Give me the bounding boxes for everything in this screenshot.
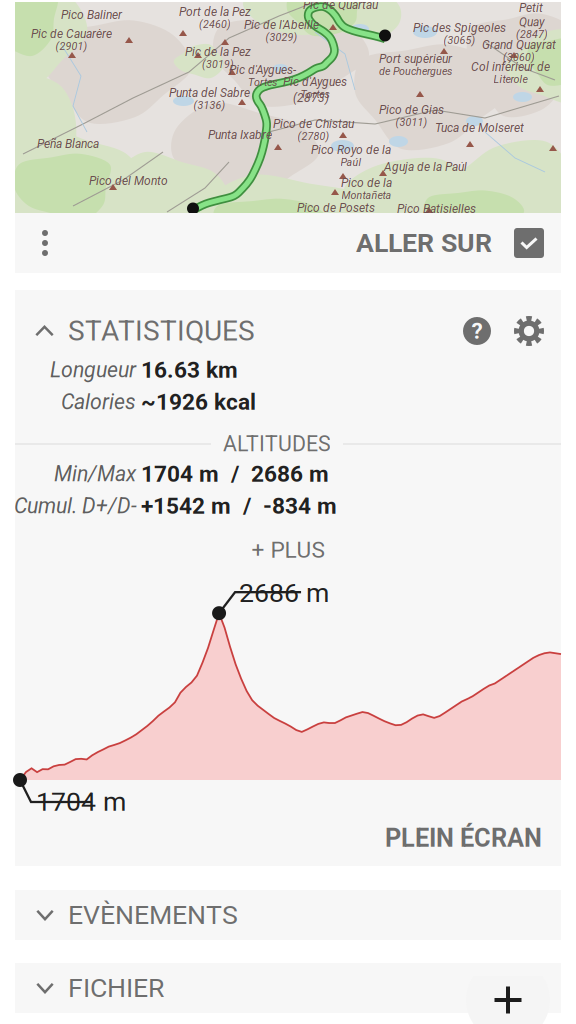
- staticText: Pico de Gias: [379, 103, 444, 117]
- button[interactable]: Settings: [503, 304, 555, 358]
- staticText: 16.63 km: [141, 357, 238, 383]
- staticText: STATISTIQUES: [68, 315, 255, 347]
- staticText: (2460): [199, 18, 231, 30]
- button[interactable]: STATISTIQUES: [15, 304, 335, 358]
- staticText: (2847): [516, 28, 548, 41]
- staticText: Min/Max: [54, 461, 136, 486]
- staticText: 1704 m / 2686 m: [141, 461, 329, 487]
- staticText: Aguja de la Paúl: [384, 160, 467, 174]
- staticText: ~1926 kcal: [141, 389, 256, 415]
- staticText: Grand Quayrat: [482, 38, 556, 52]
- staticText: (3060): [503, 51, 535, 63]
- staticText: 2686 m: [239, 577, 329, 608]
- staticText: Literole: [493, 73, 527, 85]
- staticText: Punta del Sabre: [169, 86, 250, 100]
- staticText: Pico de Posets: [297, 201, 375, 215]
- staticText: Pico Royo de la: [311, 143, 391, 157]
- staticText: +1542 m / -834 m: [141, 493, 337, 519]
- staticText: Pico Baliner: [61, 8, 122, 22]
- button[interactable]: + PLUS: [15, 530, 561, 570]
- staticText: Pico de la: [341, 176, 392, 190]
- staticText: Petit Quay: [519, 1, 545, 29]
- staticText: ALTITUDES: [223, 431, 331, 456]
- staticText: Port de la Pez: [179, 5, 251, 19]
- staticText: Tuca de Molseret: [435, 121, 524, 135]
- staticText: Pic d'Aygues-: [229, 63, 296, 77]
- staticText: Pic de la Pez: [185, 45, 251, 59]
- staticText: (3011): [395, 116, 427, 128]
- staticText: ?: [471, 318, 482, 344]
- staticText: + PLUS: [251, 537, 324, 563]
- staticText: (3136): [193, 99, 225, 111]
- button[interactable]: Add: [466, 976, 550, 1024]
- staticText: Tortes: [300, 88, 329, 100]
- staticText: PLEIN ÉCRAN: [385, 823, 542, 853]
- button[interactable]: ALLER SUR: [356, 213, 561, 273]
- staticText: Longueur: [50, 357, 136, 382]
- staticText: 1704 m: [36, 786, 126, 817]
- staticText: de Pouchergues: [379, 65, 452, 77]
- staticText: Pico de Chistau: [273, 117, 354, 131]
- staticText: EVÈNEMENTS: [68, 899, 238, 931]
- staticText: Peña Blanca: [37, 137, 99, 151]
- staticText: Pic de Quartau: [303, 0, 378, 12]
- staticText: Pic des Spigeoles: [413, 21, 506, 35]
- staticText: Tortes: [248, 76, 277, 88]
- button[interactable]: PLEIN ÉCRAN: [15, 810, 561, 866]
- staticText: Pic de Cauarère: [31, 27, 112, 41]
- button[interactable]: More options: [15, 213, 111, 273]
- staticText: Pico del Monto: [89, 174, 168, 188]
- staticText: FICHIER: [68, 972, 164, 1004]
- staticText: (3065): [443, 34, 475, 46]
- staticText: Punta Ixabre: [208, 128, 272, 142]
- staticText: Pic d'Aygues: [283, 75, 347, 89]
- staticText: (3029): [265, 31, 297, 43]
- button[interactable]: Help: [451, 304, 503, 358]
- staticText: Col inférieur de: [471, 60, 550, 74]
- staticText: (2901): [55, 40, 87, 52]
- button[interactable]: FICHIER: [15, 963, 561, 1013]
- button[interactable]: EVÈNEMENTS: [15, 890, 561, 940]
- staticText: Pico Batisielles: [397, 202, 476, 216]
- staticText: (2780): [297, 130, 329, 142]
- staticText: Cumul. D+/D-: [14, 493, 137, 518]
- staticText: Calories: [61, 389, 136, 414]
- staticText: ALLER SUR: [356, 227, 492, 259]
- staticText: Paúl: [340, 156, 361, 168]
- staticText: Port supérieur: [379, 52, 452, 66]
- staticText: Montañeta: [341, 189, 391, 201]
- staticText: (2873): [293, 91, 329, 105]
- staticText: (3019): [202, 58, 234, 70]
- staticText: Pic de l'Abeille: [244, 18, 319, 32]
